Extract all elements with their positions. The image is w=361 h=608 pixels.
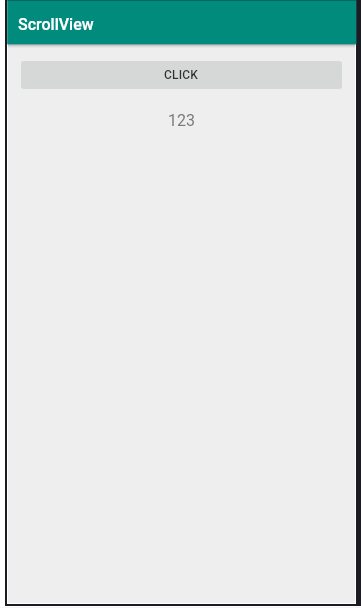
button[interactable]: CLICK: [21, 61, 342, 89]
staticText: CLICK: [164, 68, 199, 82]
staticText: 123: [168, 111, 195, 130]
staticText: ScrollView: [18, 15, 94, 34]
